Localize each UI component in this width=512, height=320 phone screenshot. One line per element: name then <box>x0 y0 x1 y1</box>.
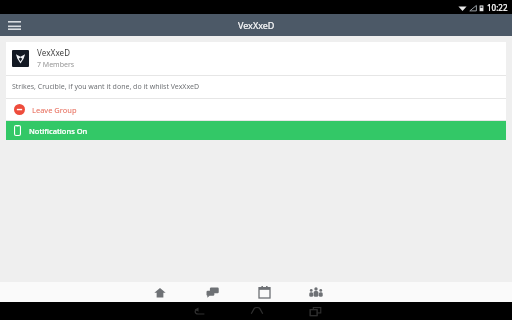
button[interactable]: VexXxeD <box>6 42 506 75</box>
staticText: Leave Group <box>32 105 77 115</box>
button[interactable]: Strikes, Crucible, if you want it done, … <box>6 76 506 98</box>
button[interactable]: Messages <box>200 282 224 302</box>
staticText: VexXxeD <box>37 47 71 58</box>
staticText: Notifications On <box>29 126 88 136</box>
button[interactable]: Open navigation menu <box>4 15 24 35</box>
button[interactable]: Notifications On <box>6 121 506 140</box>
button[interactable]: Home <box>148 282 172 302</box>
staticText: Strikes, Crucible, if you want it done, … <box>12 82 200 92</box>
button[interactable]: Recent apps <box>302 302 328 320</box>
button[interactable]: Leave Group <box>6 99 506 120</box>
staticText: 10:22 <box>487 2 508 13</box>
button[interactable]: Home <box>244 302 270 320</box>
button[interactable]: Back <box>186 302 212 320</box>
button[interactable]: Groups <box>304 282 328 302</box>
staticText: VexXxeD <box>238 19 275 31</box>
staticText: 7 Members <box>37 60 75 70</box>
button[interactable]: Events <box>252 282 276 302</box>
